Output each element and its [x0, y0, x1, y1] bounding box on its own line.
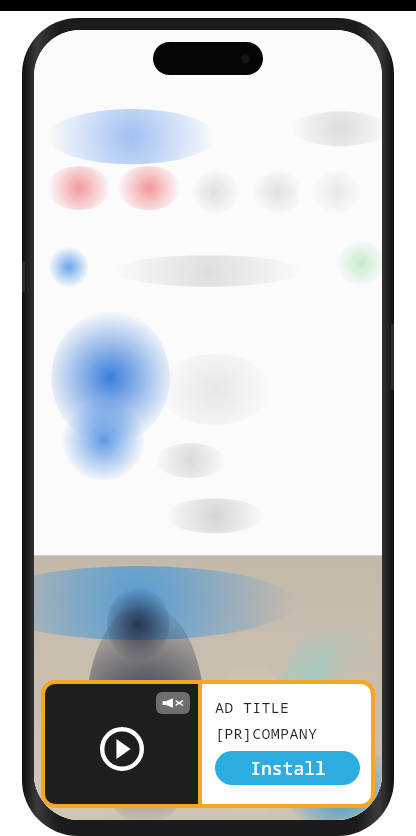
button[interactable]: AD TITLE — [202, 684, 371, 804]
staticText: Install — [250, 756, 326, 781]
button[interactable]: Install — [215, 751, 360, 785]
button[interactable]: Play video ad — [45, 684, 198, 804]
button[interactable]: Unmute — [156, 692, 190, 714]
staticText: [PR]COMPANY — [215, 723, 318, 743]
staticText: AD TITLE — [215, 697, 290, 717]
